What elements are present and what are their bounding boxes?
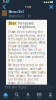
staticText: You: [49, 97, 52, 99]
staticText: Post your reply: [5, 85, 26, 89]
staticText: Post: [25, 5, 31, 8]
staticText: friends and neighbours,: [18, 22, 36, 29]
staticText: We kept returning to the same question, …: [8, 64, 45, 85]
button[interactable]: Search: [11, 91, 22, 100]
button[interactable]: Back: [1, 3, 7, 10]
button[interactable]: You: [45, 91, 56, 100]
button[interactable]: Alerts: [22, 91, 34, 100]
button[interactable]: Inbox: [34, 91, 45, 100]
button[interactable]: Home: [0, 91, 11, 100]
staticText: Marcus Bell: [8, 10, 24, 14]
staticText: Inbox: [37, 97, 41, 99]
staticText: Home: [4, 97, 8, 99]
staticText: Alerts: [26, 97, 30, 99]
button[interactable]: Close: [48, 4, 55, 10]
button[interactable]: Post your reply: [2, 85, 54, 90]
staticText: ▪▪▪: [43, 0, 49, 3]
staticText: I have been turning this over for weeks …: [8, 30, 45, 62]
staticText: Search: [14, 97, 20, 99]
staticText: @marcusbell · 4h: [8, 14, 31, 18]
staticText: 9:41: [3, 0, 10, 4]
staticText: Dear: [9, 22, 16, 25]
